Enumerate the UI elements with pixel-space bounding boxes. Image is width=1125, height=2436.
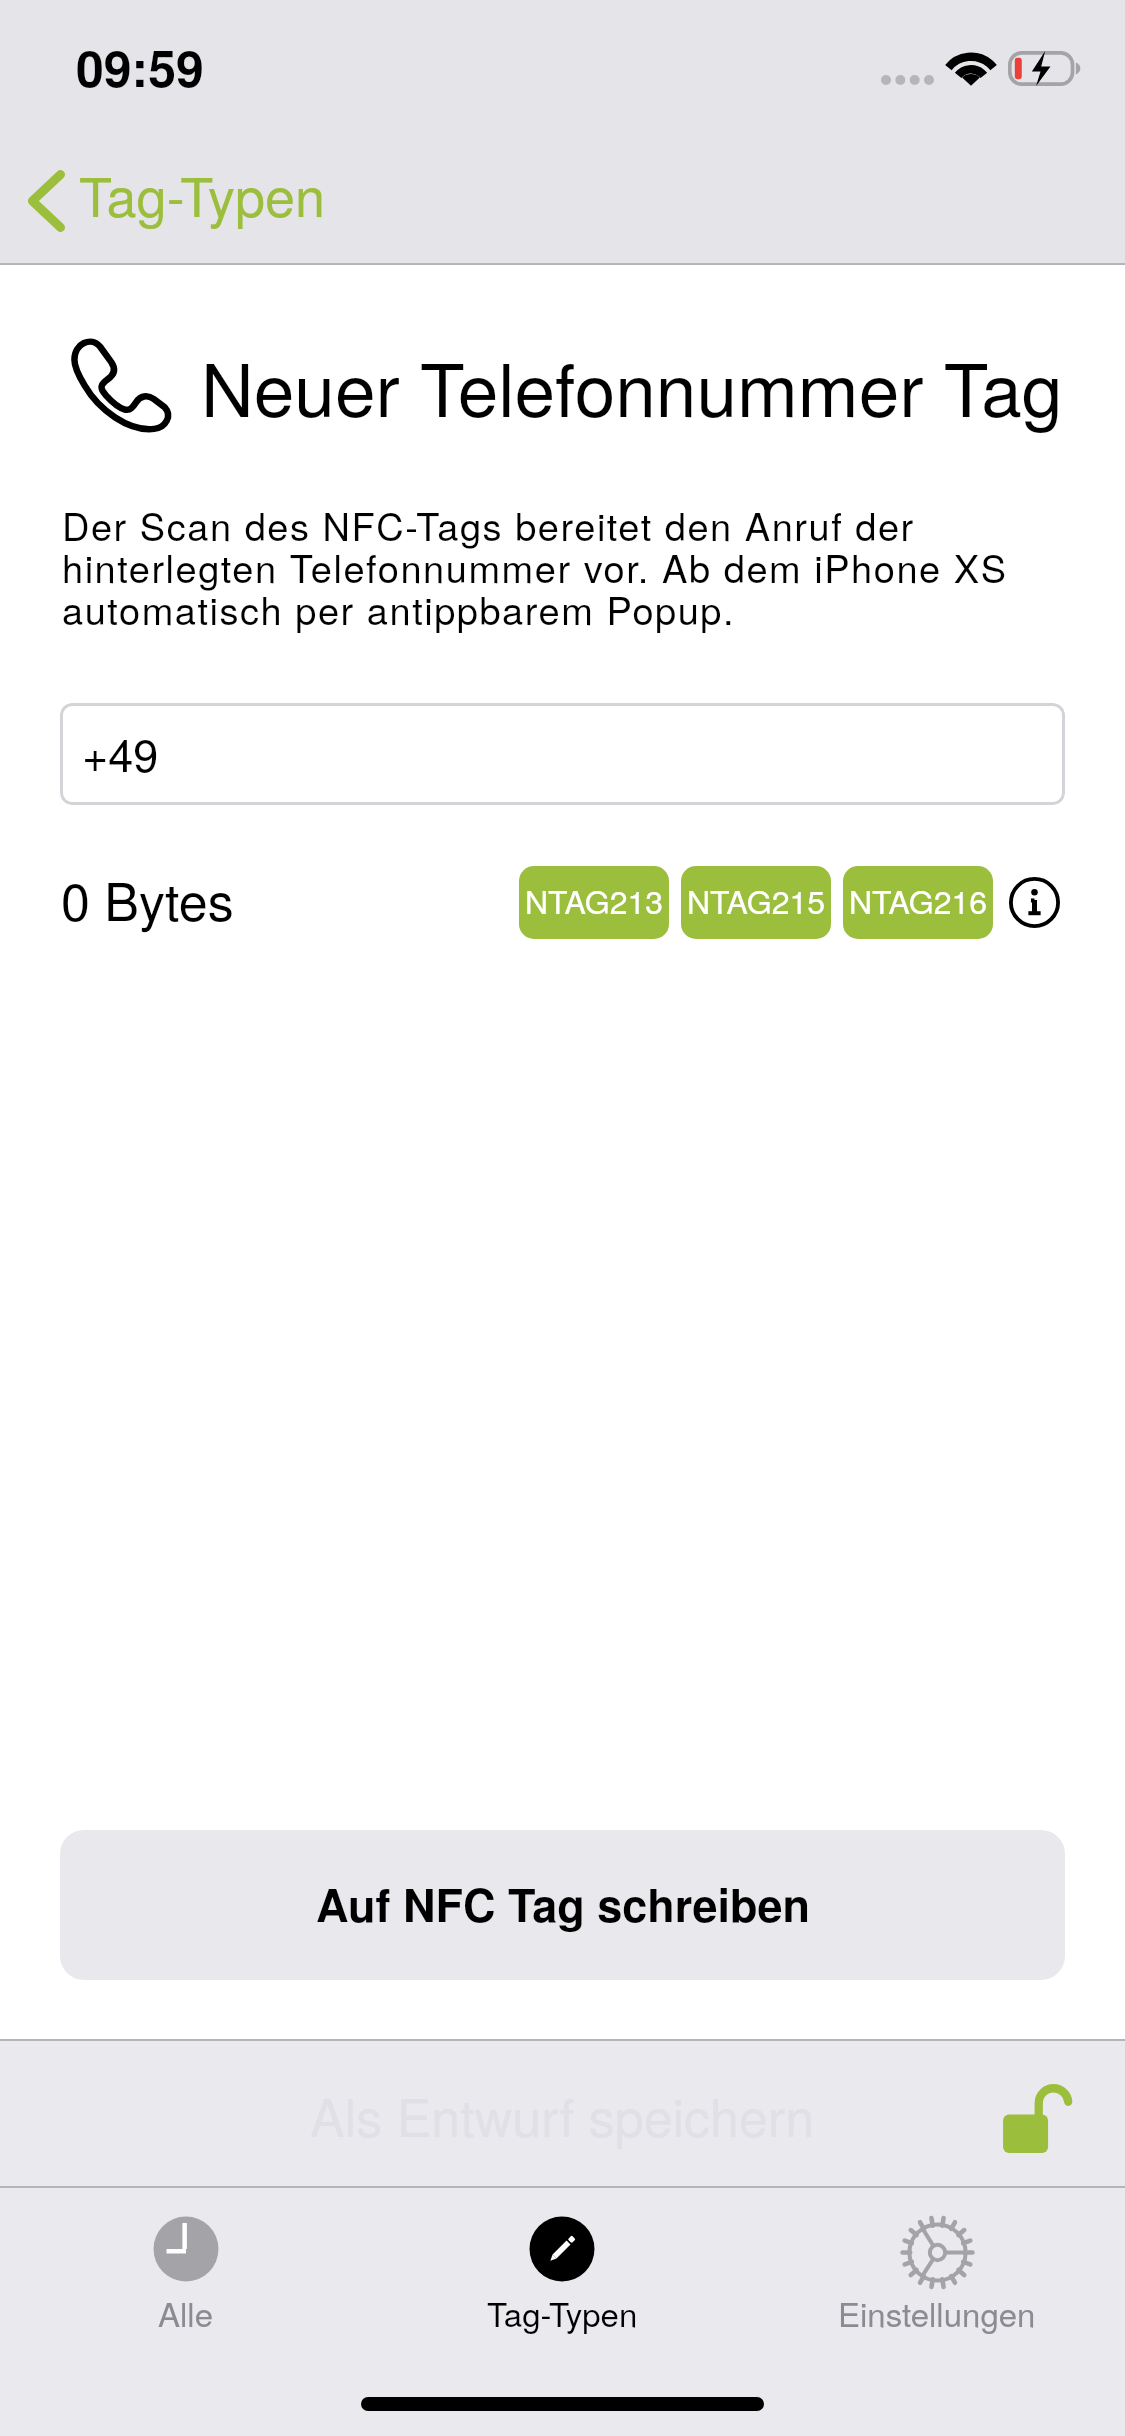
staticText: Der Scan des NFC-Tags bereitet den Anruf… [62, 497, 1074, 635]
staticText: 09:59 [76, 31, 204, 103]
button[interactable]: NTAG215 [681, 866, 831, 939]
staticText: Alle [158, 2289, 214, 2336]
button[interactable]: Auf NFC Tag schreiben [60, 1830, 1065, 1980]
button[interactable]: NTAG216 [843, 866, 993, 939]
staticText: Neuer Telefonnummer Tag [201, 333, 1063, 438]
button[interactable]: Alle [66, 2209, 306, 2336]
staticText: NTAG213 [525, 877, 664, 923]
staticText: +49 [82, 720, 159, 784]
button[interactable]: +49 [60, 703, 1065, 805]
staticText: NTAG216 [849, 877, 988, 923]
button[interactable]: Tag-Typen [442, 2209, 682, 2336]
staticText: Tag-Typen [487, 2289, 638, 2336]
button[interactable]: Tag-Typen [0, 155, 349, 247]
button[interactable]: NTAG213 [519, 866, 669, 939]
staticText: Als Entwurf speichern [310, 2077, 815, 2151]
staticText: Auf NFC Tag schreiben [316, 1871, 810, 1935]
button[interactable]: Einstellungen [817, 2209, 1057, 2336]
staticText: Tag-Typen [79, 155, 325, 232]
staticText: Einstellungen [838, 2289, 1036, 2336]
button[interactable]: Info [1009, 877, 1060, 928]
button[interactable]: Als Entwurf speichern [0, 2041, 1125, 2186]
staticText: 0 Bytes [61, 861, 234, 935]
staticText: NTAG215 [687, 877, 826, 923]
